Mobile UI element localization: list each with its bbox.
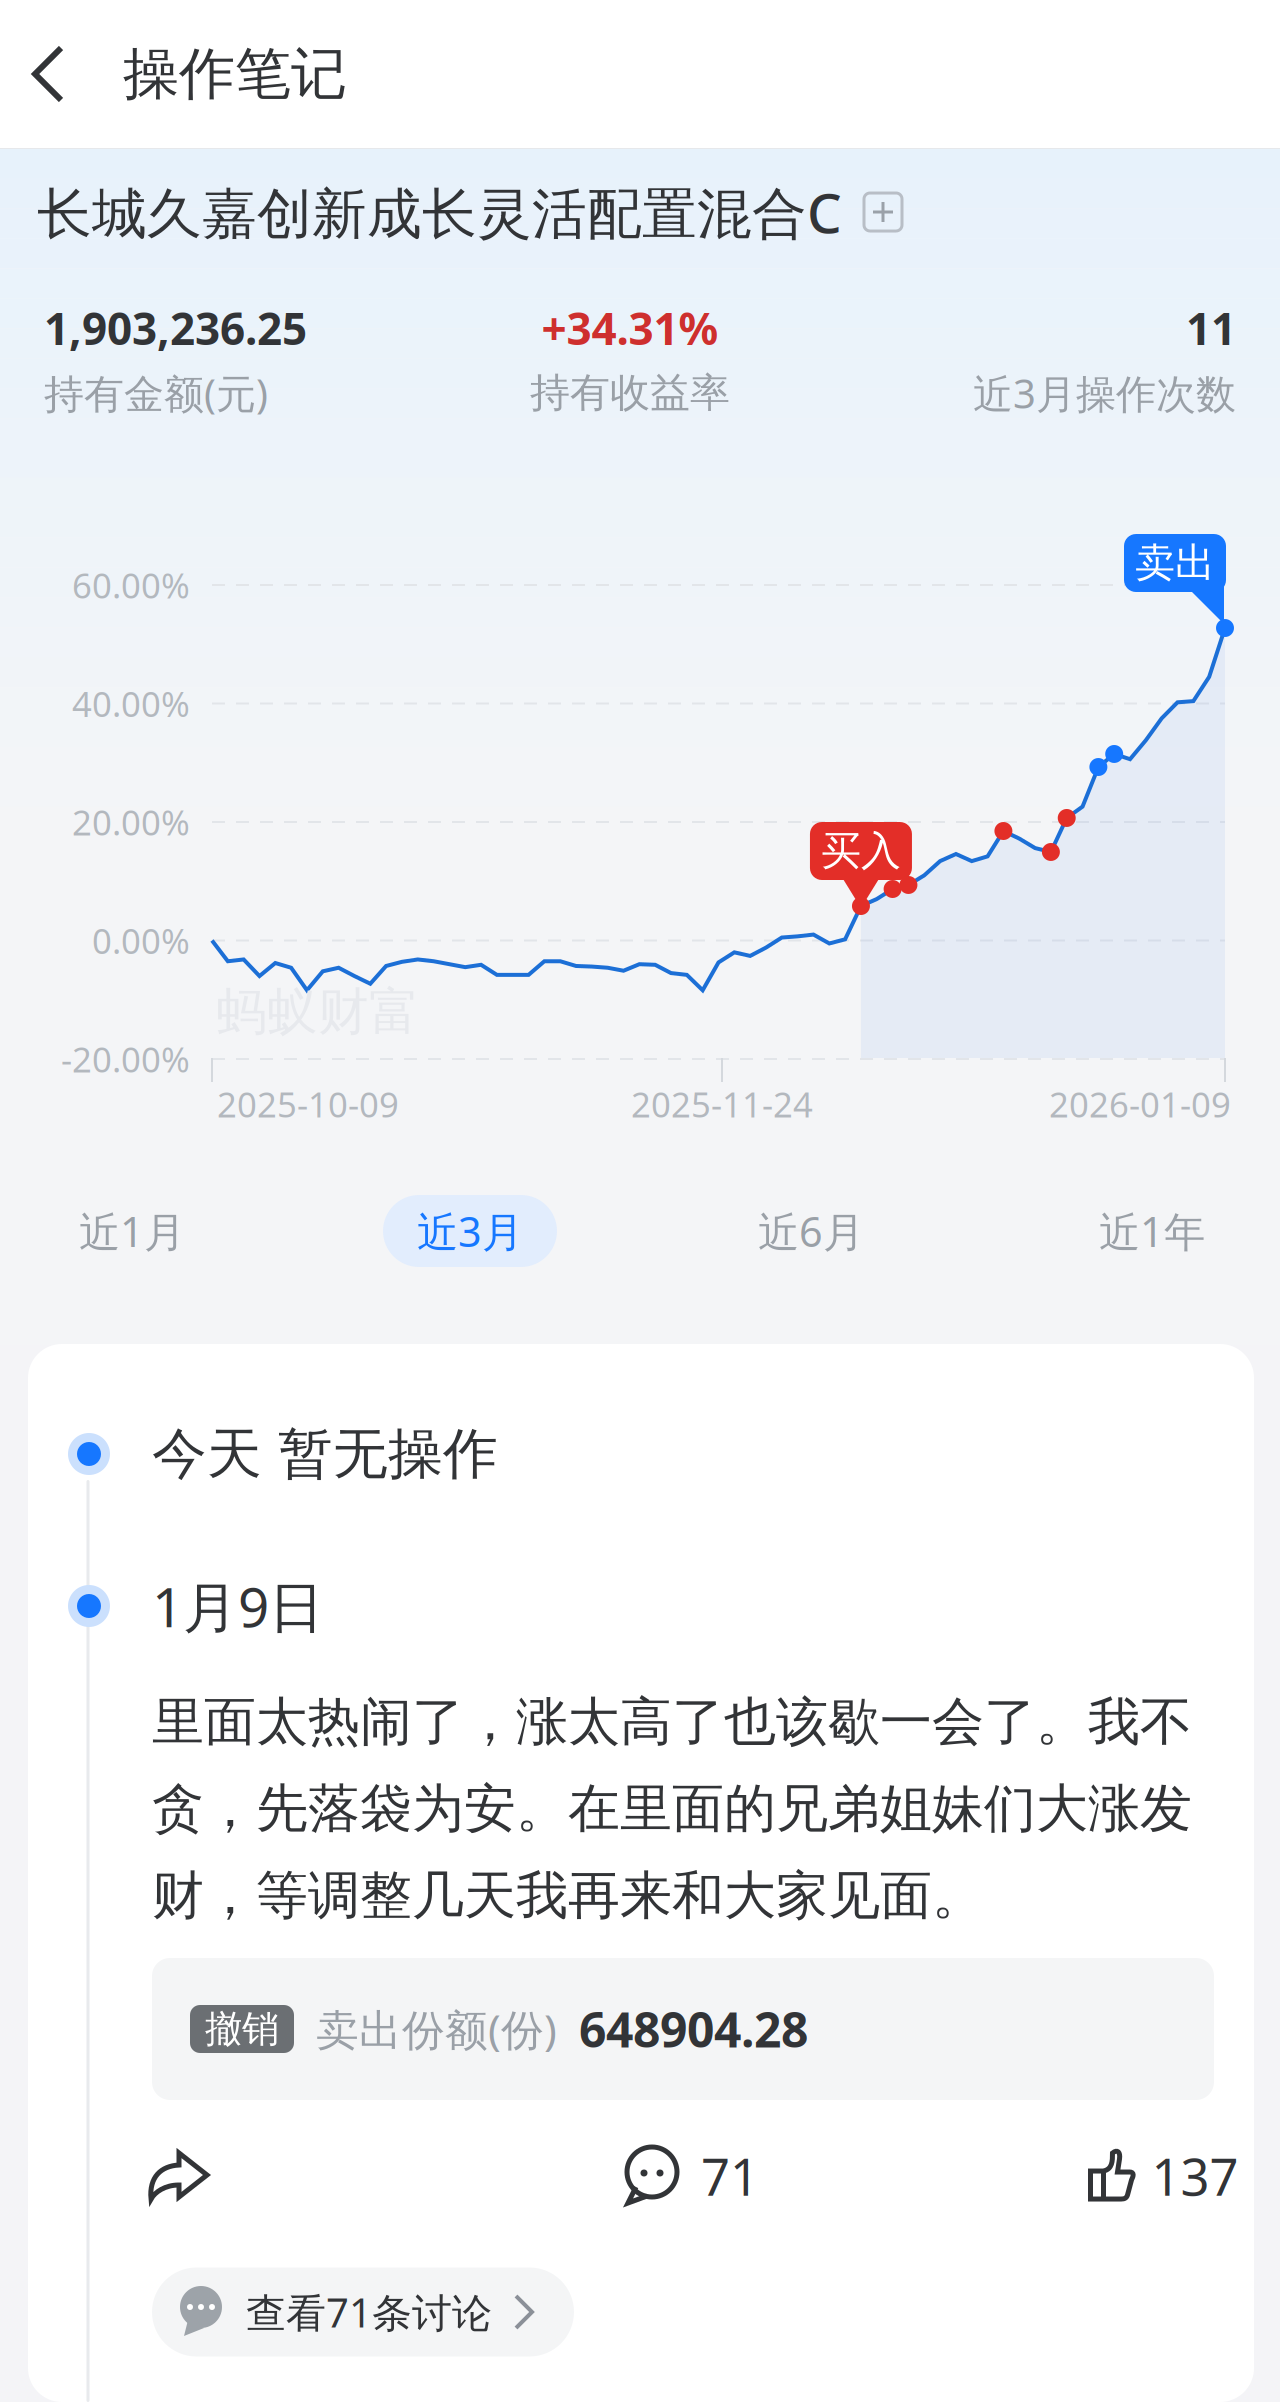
button[interactable]: 71 [623,2136,759,2216]
staticText: 1,903,236.25 [44,299,307,357]
button[interactable]: 近3月 [383,1195,557,1267]
staticText: -20.00% [61,1036,190,1082]
staticText: 137 [1151,2142,1238,2210]
staticText: 0.00% [92,917,190,963]
staticText: 操作笔记 [123,40,347,108]
button[interactable]: Back [0,0,96,148]
staticText: 648904.28 [579,1997,808,2061]
staticText: 20.00% [72,799,190,845]
button[interactable]: 查看71条讨论 [152,2267,574,2356]
staticText: 60.00% [72,562,190,608]
staticText: 2025-10-09 [217,1081,399,1127]
button[interactable]: 137 [1085,2136,1238,2216]
staticText: 卖出份额(份) [316,2001,557,2057]
button[interactable]: 近6月 [724,1195,898,1267]
staticText: 11 [1186,299,1236,357]
staticText: 长城久嘉创新成长灵活配置混合C [37,176,842,248]
staticText: 买入 [821,826,901,876]
button[interactable]: Share [123,2136,233,2216]
button[interactable]: 近1年 [1065,1195,1239,1267]
staticText: 近1年 [1099,1204,1205,1258]
staticText: 持有金额(元) [44,366,268,419]
staticText: 查看71条讨论 [246,2285,492,2338]
staticText: 卖出 [1135,538,1215,588]
staticText: 71 [701,2142,759,2210]
staticText: 持有收益率 [530,368,730,417]
staticText: 近3月操作次数 [973,366,1236,419]
staticText: 近1月 [79,1204,185,1258]
staticText: +34.31% [541,299,718,357]
staticText: 2025-11-24 [631,1081,813,1127]
button[interactable]: 长城久嘉创新成长灵活配置混合C [37,181,1237,243]
staticText: 撤销 [205,2006,279,2052]
staticText: 里面太热闹了，涨太高了也该歇一会了。我不贪，先落袋为安。在里面的兄弟姐妹们大涨发… [152,1690,1192,1928]
staticText: 蚂蚁财富 [216,981,420,1043]
staticText: 2026-01-09 [1049,1081,1231,1127]
staticText: 今天 暂无操作 [152,1420,498,1487]
button[interactable]: 近1月 [45,1195,219,1267]
staticText: 1月9日 [152,1570,324,1642]
staticText: 近6月 [758,1204,864,1258]
staticText: 40.00% [72,680,190,726]
staticText: 近3月 [417,1204,523,1258]
